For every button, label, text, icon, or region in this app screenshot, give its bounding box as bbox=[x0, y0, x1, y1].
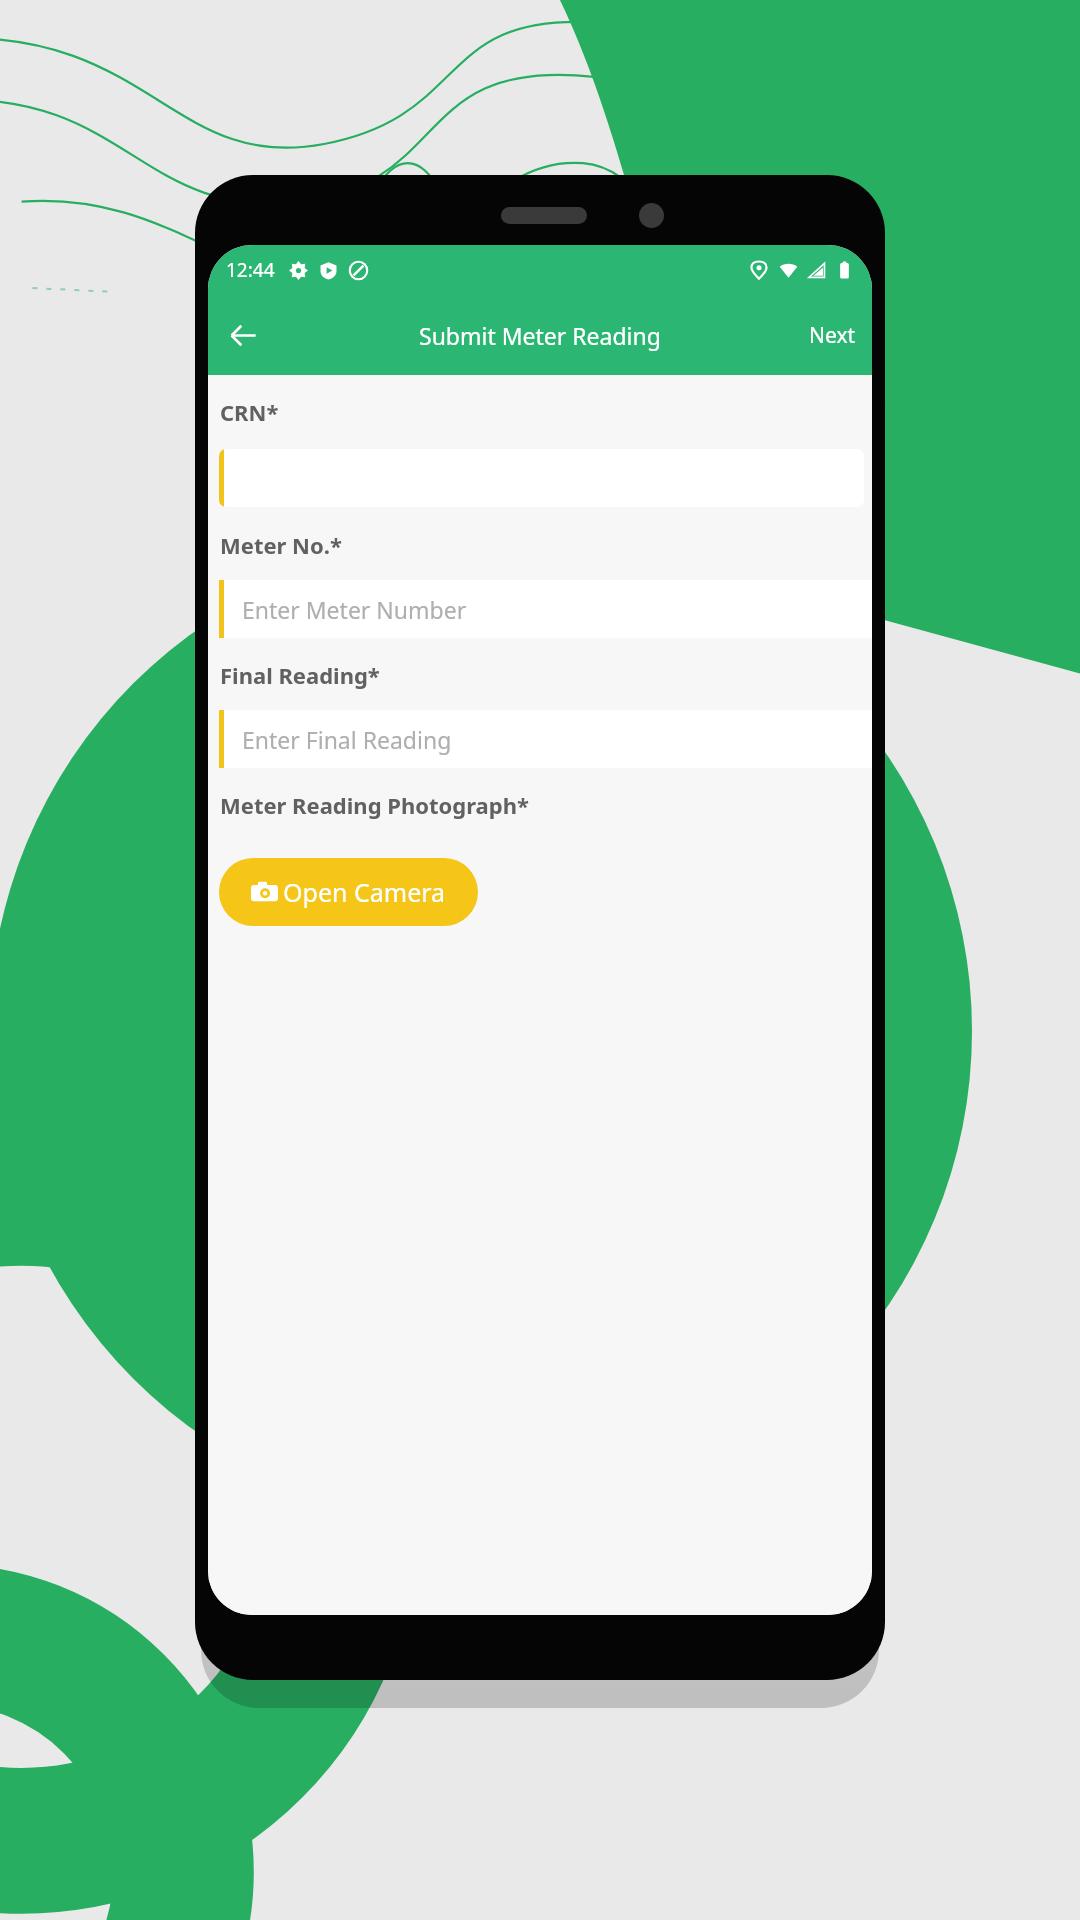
staticText: CRN* bbox=[220, 397, 279, 427]
button[interactable]: Enter Meter Number bbox=[219, 580, 872, 638]
staticText: Final Reading* bbox=[220, 660, 380, 690]
button[interactable]: Back bbox=[216, 308, 270, 362]
staticText: Meter No.* bbox=[220, 530, 342, 560]
staticText: 12:44 bbox=[226, 257, 275, 283]
button[interactable]: Enter Final Reading bbox=[219, 710, 872, 768]
button[interactable]: Next bbox=[793, 311, 872, 360]
staticText: Enter Meter Number bbox=[242, 594, 467, 625]
button[interactable]: Open Camera bbox=[219, 858, 478, 926]
staticText: Open Camera bbox=[283, 875, 446, 909]
staticText: Enter Final Reading bbox=[242, 724, 452, 755]
staticText: Next bbox=[809, 321, 856, 350]
button[interactable] bbox=[219, 449, 864, 507]
staticText: Meter Reading Photograph* bbox=[220, 790, 529, 820]
staticText: Submit Meter Reading bbox=[419, 320, 661, 351]
